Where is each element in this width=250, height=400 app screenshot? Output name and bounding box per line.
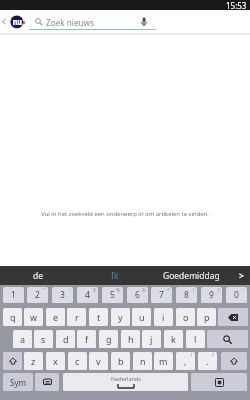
button[interactable]: 8	[176, 287, 197, 303]
button[interactable]: t	[89, 308, 108, 326]
button[interactable]: c	[68, 352, 87, 370]
button[interactable]: 1	[3, 287, 24, 303]
staticText: Zoek nieuws	[46, 17, 94, 28]
staticText: 1	[11, 289, 16, 301]
button[interactable]: y	[111, 308, 130, 326]
staticText: c	[75, 355, 80, 367]
button[interactable]: Back	[0, 14, 8, 29]
button[interactable]: Shift	[3, 352, 22, 370]
staticText: >	[239, 270, 244, 282]
button[interactable]: Voice search	[139, 16, 149, 26]
staticText: b	[118, 355, 124, 367]
staticText: i	[162, 311, 165, 323]
button[interactable]: ,	[176, 352, 195, 370]
staticText: l	[194, 333, 197, 345]
button[interactable]: de	[6, 266, 71, 286]
button[interactable]: x	[46, 352, 65, 370]
button[interactable]: 3	[52, 287, 73, 303]
staticText: z	[31, 355, 36, 367]
button[interactable]: w	[24, 308, 43, 326]
button[interactable]: h	[121, 330, 140, 348]
staticText: 0	[234, 289, 239, 301]
staticText: k	[171, 333, 176, 345]
staticText: 15:53	[226, 0, 247, 10]
button[interactable]: 0	[226, 287, 247, 303]
staticText: %	[116, 287, 121, 294]
button[interactable]: i	[154, 308, 173, 326]
button[interactable]: Space	[63, 373, 188, 391]
button[interactable]: s	[34, 330, 53, 348]
staticText: u	[139, 311, 145, 323]
button[interactable]: e	[46, 308, 65, 326]
staticText: 6	[135, 289, 140, 301]
staticText: 8	[184, 289, 189, 301]
button[interactable]: 7	[151, 287, 172, 303]
button[interactable]: r	[67, 308, 86, 326]
staticText: (	[193, 287, 195, 294]
staticText: $	[93, 287, 96, 294]
staticText: q	[10, 311, 16, 323]
button[interactable]: z	[24, 352, 43, 370]
staticText: '	[243, 287, 245, 294]
button[interactable]: n	[133, 352, 152, 370]
staticText: .	[206, 355, 209, 367]
button[interactable]: 2	[27, 287, 48, 303]
staticText: Ik	[111, 270, 119, 282]
staticText: 3	[60, 289, 65, 301]
button[interactable]: k	[164, 330, 183, 348]
staticText: 2	[35, 289, 40, 301]
button[interactable]: p	[197, 308, 216, 326]
staticText: "	[43, 287, 46, 294]
staticText: d	[63, 333, 69, 345]
button[interactable]: Shift	[221, 352, 247, 370]
button[interactable]: 4	[77, 287, 98, 303]
staticText: ·	[69, 287, 71, 294]
button[interactable]: l	[186, 330, 205, 348]
staticText: g	[106, 333, 112, 345]
staticText: j	[150, 333, 153, 345]
staticText: )	[218, 287, 220, 294]
staticText: p	[204, 311, 210, 323]
button[interactable]: Goedemiddag	[152, 266, 230, 286]
button[interactable]: d	[56, 330, 75, 348]
staticText: t	[97, 311, 101, 323]
button[interactable]: o	[176, 308, 195, 326]
button[interactable]: Switch input method	[191, 373, 247, 391]
button[interactable]: Search	[207, 330, 248, 348]
staticText: a	[20, 333, 26, 345]
staticText: s	[41, 333, 46, 345]
staticText: ?	[212, 352, 215, 359]
button[interactable]: f	[77, 330, 96, 348]
button[interactable]: j	[142, 330, 161, 348]
button[interactable]: More suggestions	[232, 266, 250, 286]
button[interactable]: a	[13, 330, 32, 348]
button[interactable]: q	[3, 308, 22, 326]
button[interactable]: Backspace	[218, 308, 248, 326]
button[interactable]: b	[111, 352, 130, 370]
staticText: e	[53, 311, 59, 323]
staticText: f	[85, 333, 89, 345]
staticText: 7	[159, 289, 164, 301]
staticText: 9	[209, 289, 214, 301]
button[interactable]: 6	[127, 287, 148, 303]
button[interactable]: m	[154, 352, 173, 370]
button[interactable]: .	[198, 352, 217, 370]
button[interactable]: g	[99, 330, 118, 348]
staticText: !	[191, 352, 193, 359]
button[interactable]: 5	[102, 287, 123, 303]
button[interactable]: Emoji	[35, 373, 59, 391]
staticText: de	[33, 270, 44, 282]
button[interactable]: u	[132, 308, 151, 326]
staticText: n	[140, 355, 146, 367]
staticText: 5	[110, 289, 115, 301]
staticText: Goedemiddag	[163, 270, 220, 282]
button[interactable]: NU.nl home	[10, 15, 26, 29]
button[interactable]: Ik	[82, 266, 148, 286]
button[interactable]: Sym	[3, 373, 33, 391]
staticText: y	[118, 311, 123, 323]
staticText: r	[75, 311, 79, 323]
button[interactable]: 9	[201, 287, 222, 303]
staticText: 4	[85, 289, 90, 301]
staticText: Nederlands	[111, 375, 141, 382]
button[interactable]: v	[89, 352, 108, 370]
